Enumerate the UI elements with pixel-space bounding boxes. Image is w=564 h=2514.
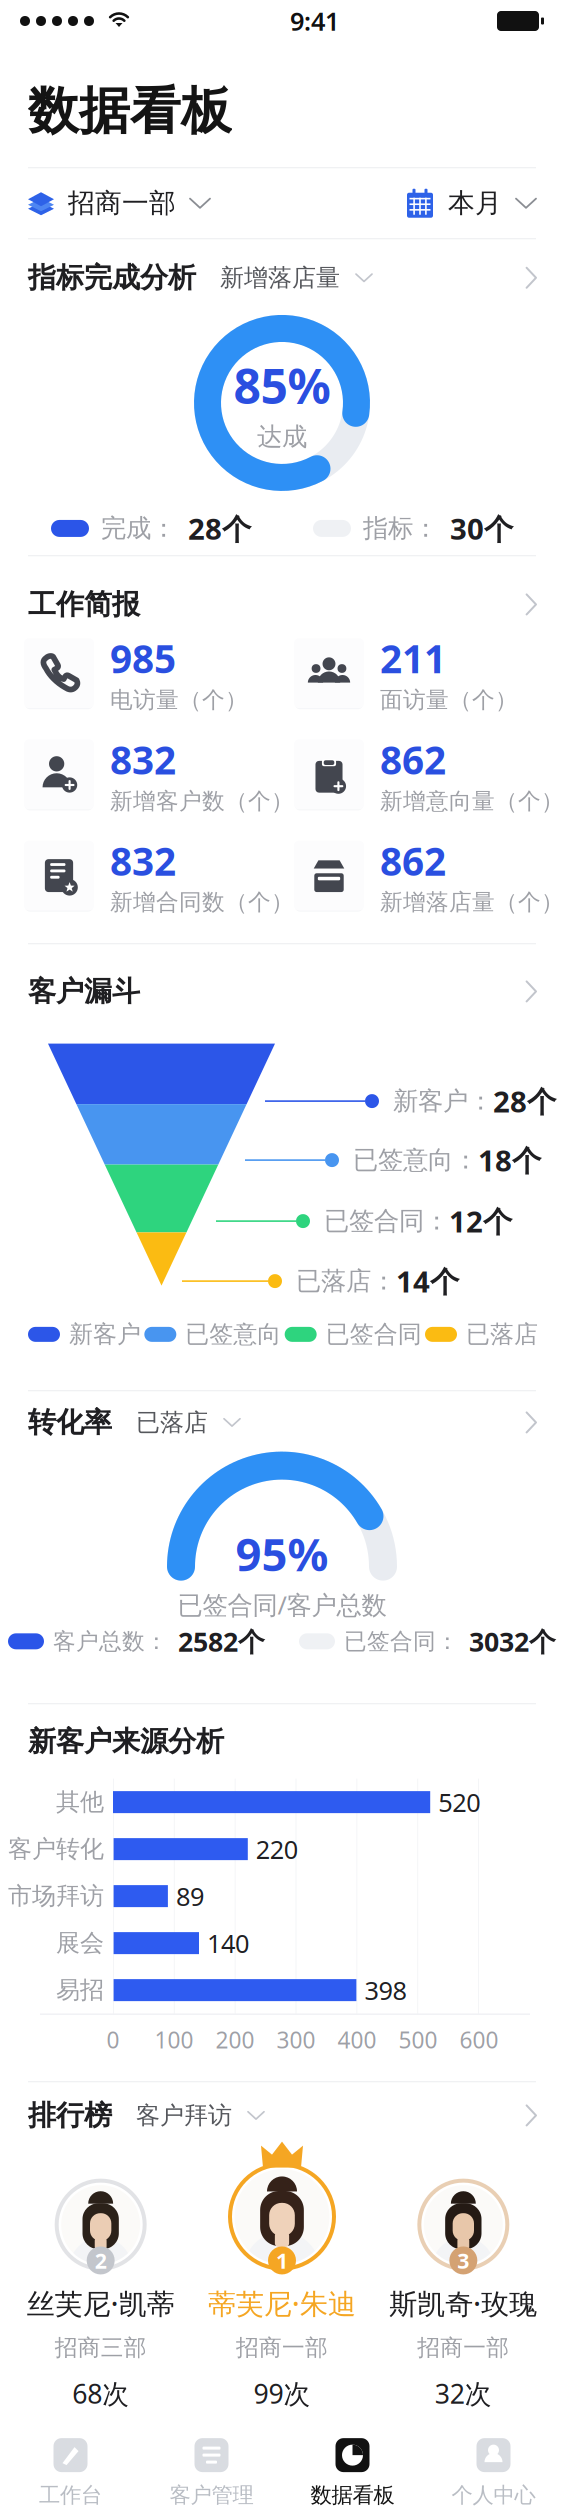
staticText: 862 (380, 835, 446, 886)
button[interactable]: 本月 (406, 177, 536, 230)
staticText: 已落店： (296, 1265, 396, 1297)
staticText: 3 (457, 2246, 469, 2275)
staticText: 9:41 (290, 4, 339, 38)
staticText: 已签意向 (185, 1320, 281, 1349)
staticText: 招商一部 (417, 2334, 509, 2362)
staticText: 已签意向： (353, 1144, 478, 1176)
staticText: 招商一部 (68, 187, 176, 220)
staticText: 个人中心 (451, 2482, 535, 2508)
staticText: 30个 (450, 509, 513, 548)
staticText: 数据看板 (310, 2482, 394, 2508)
button[interactable]: 985 (24, 633, 284, 714)
staticText: 客户漏斗 (28, 974, 140, 1009)
staticText: 985 (110, 633, 176, 684)
staticText: 电访量（个） (110, 686, 248, 714)
staticText: 400 (337, 2025, 376, 2055)
staticText: 客户管理 (169, 2482, 253, 2508)
staticText: 0 (106, 2025, 119, 2055)
staticText: 85% (233, 353, 330, 417)
staticText: 95% (235, 1524, 328, 1584)
staticText: 862 (380, 734, 446, 785)
staticText: 200 (215, 2025, 254, 2055)
staticText: 本月 (448, 187, 502, 220)
staticText: 新客户： (393, 1085, 493, 1117)
staticText: 完成： (101, 513, 176, 544)
staticText: 市场拜访 (8, 1881, 104, 1911)
staticText: 14个 (396, 1262, 459, 1301)
staticText: 转化率 (28, 1405, 112, 1440)
staticText: 100 (154, 2025, 193, 2055)
staticText: 工作台 (39, 2482, 102, 2508)
staticText: 招商一部 (236, 2334, 328, 2362)
staticText: 客户总数： (53, 1627, 168, 1655)
staticText: 已签合同： (344, 1627, 459, 1655)
staticText: 新增落店量（个） (380, 888, 564, 916)
button[interactable]: 3 (373, 2175, 554, 2269)
button[interactable]: More 转化率 (517, 1406, 536, 1438)
button[interactable]: 862 (294, 734, 554, 815)
staticText: 新增合同数（个） (110, 888, 294, 916)
staticText: 指标完成分析 (28, 261, 196, 295)
staticText: 蒂芙尼·朱迪 (208, 2285, 356, 2322)
staticText: 2582个 (178, 1624, 265, 1659)
staticText: 新增落店量 (220, 263, 340, 292)
staticText: 已落店 (466, 1320, 538, 1349)
staticText: 89 (176, 1879, 204, 1913)
staticText: 工作简报 (28, 587, 140, 622)
staticText: 68次 (72, 2376, 129, 2411)
button[interactable]: More 工作简报 (517, 588, 536, 620)
button[interactable]: 工作台 (0, 2436, 141, 2508)
staticText: 32次 (435, 2376, 492, 2411)
staticText: 斯凯奇·玫瑰 (389, 2285, 537, 2322)
button[interactable]: 862 (294, 835, 554, 916)
button[interactable]: More 客户漏斗 (517, 975, 536, 1007)
button[interactable]: More 指标完成分析 (517, 262, 536, 294)
staticText: 12个 (449, 1202, 512, 1241)
staticText: 600 (459, 2025, 498, 2055)
button[interactable]: 1 (191, 2129, 373, 2269)
staticText: 达成 (257, 421, 307, 452)
staticText: 新增客户数（个） (110, 787, 294, 815)
staticText: 832 (110, 734, 176, 785)
staticText: 2 (95, 2246, 107, 2275)
staticText: 500 (398, 2025, 437, 2055)
staticText: 其他 (56, 1787, 104, 1817)
staticText: 招商三部 (55, 2334, 147, 2362)
staticText: 1 (276, 2246, 288, 2275)
staticText: 已落店 (136, 1408, 208, 1437)
staticText: 211 (380, 633, 446, 684)
button[interactable]: 832 (24, 734, 284, 815)
staticText: 28个 (493, 1082, 556, 1121)
button[interactable]: More 排行榜 (517, 2099, 536, 2131)
staticText: 99次 (253, 2376, 310, 2411)
staticText: 数据看板 (28, 80, 232, 142)
staticText: 新客户 (69, 1320, 141, 1349)
button[interactable]: 客户管理 (141, 2436, 282, 2508)
staticText: 28个 (188, 509, 251, 548)
staticText: 300 (276, 2025, 315, 2055)
staticText: 客户拜访 (136, 2101, 232, 2130)
button[interactable]: 211 (294, 633, 554, 714)
staticText: 140 (207, 1926, 249, 1960)
staticText: 18个 (478, 1141, 541, 1180)
staticText: 398 (364, 1973, 406, 2007)
button[interactable]: 数据看板 (282, 2436, 423, 2508)
staticText: 易招 (56, 1975, 104, 2005)
staticText: 新客户来源分析 (28, 1724, 224, 1759)
button[interactable]: 个人中心 (423, 2436, 564, 2508)
staticText: 已签合同： (324, 1205, 449, 1237)
staticText: 832 (110, 835, 176, 886)
staticText: 客户转化 (8, 1834, 104, 1864)
staticText: 面访量（个） (380, 686, 518, 714)
staticText: 3032个 (469, 1624, 556, 1659)
staticText: 展会 (56, 1928, 104, 1958)
button[interactable]: 832 (24, 835, 284, 916)
staticText: 已签合同/客户总数 (177, 1588, 386, 1621)
button[interactable]: 招商一部 (28, 177, 210, 230)
staticText: 新增意向量（个） (380, 787, 564, 815)
staticText: 指标： (363, 513, 438, 544)
button[interactable]: 2 (10, 2175, 191, 2269)
staticText: 丝芙尼·凯蒂 (27, 2285, 175, 2322)
staticText: 已签合同 (326, 1320, 422, 1349)
staticText: 排行榜 (28, 2098, 112, 2133)
